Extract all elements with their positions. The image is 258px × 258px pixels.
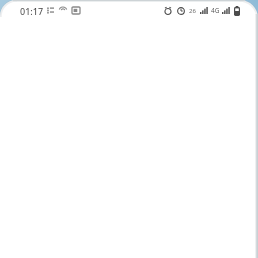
other: Alarm set bbox=[164, 7, 172, 15]
other: Screen cast bbox=[72, 7, 80, 14]
other: Notifications bbox=[47, 7, 54, 14]
other: Battery bbox=[234, 6, 240, 16]
staticText: 4G bbox=[211, 6, 220, 15]
other: Mobile signal bbox=[200, 7, 208, 14]
other: Do not disturb bbox=[177, 7, 185, 15]
staticText: 26 bbox=[189, 7, 196, 15]
other: Wi-Fi bbox=[59, 7, 67, 14]
staticText: 01:17 bbox=[20, 5, 44, 17]
other: Mobile signal bbox=[222, 7, 230, 14]
